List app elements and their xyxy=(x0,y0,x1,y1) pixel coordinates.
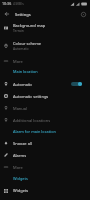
button[interactable]: Automatic settings xyxy=(0,89,90,101)
button[interactable]: Background map xyxy=(0,21,90,39)
staticText: Main location xyxy=(13,69,38,74)
button[interactable]: Help xyxy=(77,7,90,21)
button[interactable]: More xyxy=(0,57,90,65)
staticText: Alarm for main location xyxy=(13,129,56,134)
staticText: Manual xyxy=(13,106,28,111)
button[interactable]: Snooze all xyxy=(0,137,90,149)
button[interactable]: Back xyxy=(0,7,13,21)
button[interactable]: Alarms xyxy=(0,149,90,161)
staticText: 4.5KB/s xyxy=(13,2,24,6)
button[interactable]: Automatic xyxy=(0,77,90,89)
staticText: Colour scheme xyxy=(13,41,42,46)
staticText: Snooze all xyxy=(13,141,32,146)
staticText: Automatic settings xyxy=(13,94,49,99)
staticText: Automatic xyxy=(13,82,33,87)
button[interactable]: Manual xyxy=(0,101,90,113)
button[interactable]: More xyxy=(0,161,90,173)
button[interactable]: Colour scheme xyxy=(0,39,90,57)
staticText: Widgets xyxy=(13,176,28,181)
staticText: More xyxy=(13,59,23,64)
staticText: 10:36 xyxy=(2,1,12,6)
staticText: Alarms xyxy=(13,153,27,158)
staticText: Background map xyxy=(13,23,46,28)
staticText: Automatic xyxy=(13,46,29,50)
staticText: Settings xyxy=(15,12,31,17)
staticText: Terrain xyxy=(13,28,24,32)
staticText: Widgets xyxy=(13,188,29,193)
staticText: Additional locations xyxy=(13,118,51,123)
button[interactable]: Additional locations xyxy=(0,113,90,125)
staticText: More xyxy=(13,165,23,170)
button[interactable]: Widgets xyxy=(0,184,90,197)
